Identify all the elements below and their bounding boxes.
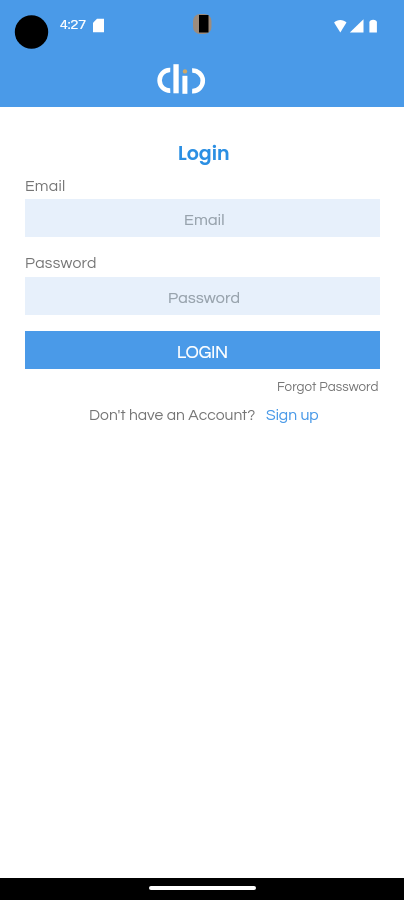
staticText: LOGIN (177, 344, 228, 362)
staticText: Password (25, 255, 97, 271)
button[interactable]: Password (25, 277, 380, 315)
button[interactable]: Sign up (266, 407, 319, 423)
staticText: Login (178, 140, 230, 167)
button[interactable]: LOGIN (25, 331, 380, 369)
button[interactable]: Forgot Password (278, 379, 380, 393)
other: clid logo (157, 62, 207, 96)
staticText: 4:27 (60, 18, 86, 32)
staticText: Email (25, 178, 66, 194)
button[interactable]: Email (25, 199, 380, 237)
staticText: Password (168, 290, 241, 306)
staticText: Email (184, 212, 225, 228)
staticText: Don't have an Account? (89, 407, 256, 423)
